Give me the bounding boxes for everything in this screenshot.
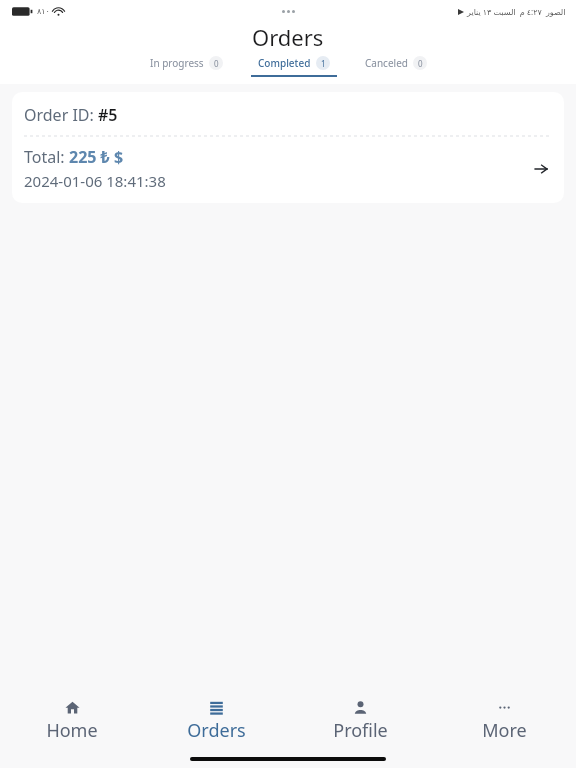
button[interactable]: Open order details bbox=[530, 158, 552, 180]
button[interactable]: Canceled bbox=[359, 56, 433, 75]
button[interactable]: Completed bbox=[245, 56, 343, 77]
button[interactable]: Orders bbox=[144, 692, 288, 750]
staticText: 1 bbox=[321, 58, 326, 69]
staticText: Total: bbox=[24, 146, 69, 168]
staticText: Order ID: bbox=[24, 104, 98, 126]
staticText: 0 bbox=[418, 58, 423, 69]
staticText: More bbox=[482, 718, 527, 743]
staticText: #5 bbox=[98, 104, 118, 126]
staticText: 225 ₺ $ bbox=[69, 146, 124, 168]
staticText: Profile bbox=[333, 718, 388, 743]
staticText: In progress bbox=[150, 56, 204, 70]
staticText: Completed bbox=[258, 56, 311, 70]
button[interactable]: Profile bbox=[288, 692, 432, 750]
button[interactable]: Order ID: bbox=[12, 92, 564, 203]
button[interactable]: More bbox=[432, 692, 576, 750]
staticText: Home bbox=[46, 718, 98, 743]
staticText: 0 bbox=[214, 58, 219, 69]
button[interactable]: Home bbox=[0, 692, 144, 750]
staticText: Orders bbox=[252, 22, 324, 52]
staticText: الصور ٤:٢٧ م السبت ١٣ يناير bbox=[467, 6, 566, 17]
staticText: Orders bbox=[187, 718, 246, 743]
staticText: 2024-01-06 18:41:38 bbox=[24, 171, 166, 191]
staticText: Canceled bbox=[365, 56, 408, 70]
button[interactable]: In progress bbox=[144, 56, 229, 75]
staticText: ٨١٠ bbox=[37, 7, 50, 16]
